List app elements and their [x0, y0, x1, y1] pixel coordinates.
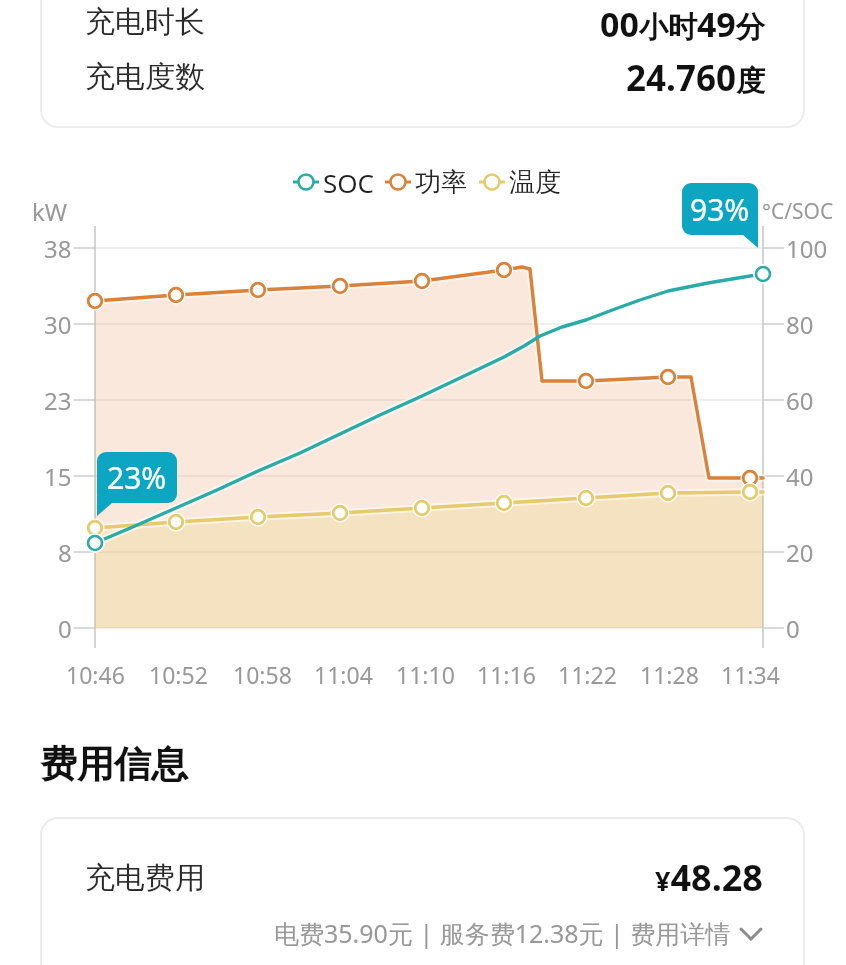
staticText: 24.760度 [626, 54, 765, 102]
staticText: 0 [786, 612, 800, 645]
staticText: 40 [786, 460, 814, 493]
staticText: 30 [44, 308, 72, 341]
staticText: 0 [58, 612, 72, 645]
staticText: 10:46 [66, 659, 125, 690]
staticText: 93% [690, 189, 750, 230]
button[interactable]: 电费35.90元 | 服务费12.38元 | 费用详情 [274, 916, 763, 950]
staticText: 充电时长 [85, 3, 205, 41]
staticText: 23% [107, 457, 167, 498]
staticText: 10:58 [233, 659, 292, 690]
staticText: 11:22 [558, 659, 617, 690]
staticText: 费用信息 [40, 741, 188, 788]
staticText: ¥48.28 [655, 853, 763, 902]
staticText: kW [32, 195, 68, 228]
staticText: 充电费用 [85, 859, 205, 897]
button[interactable] [478, 166, 558, 198]
staticText: 电费35.90元 | 服务费12.38元 | 费用详情 [274, 916, 731, 950]
staticText: 11:28 [640, 659, 699, 690]
staticText: 38 [44, 232, 72, 265]
staticText: 11:04 [314, 659, 373, 690]
staticText: 11:34 [721, 659, 780, 690]
staticText: 80 [786, 308, 814, 341]
staticText: 11:10 [396, 659, 455, 690]
staticText: 温度 [509, 166, 561, 199]
staticText: 100 [786, 232, 828, 265]
staticText: 23 [44, 384, 72, 417]
staticText: 11:16 [477, 659, 536, 690]
staticText: 15 [44, 460, 72, 493]
staticText: 00小时49分 [600, 1, 765, 47]
staticText: 60 [786, 384, 814, 417]
staticText: SOC [323, 165, 375, 200]
staticText: °C/SOC [762, 197, 834, 226]
button[interactable] [384, 166, 466, 198]
staticText: 8 [58, 536, 72, 569]
staticText: 20 [786, 536, 814, 569]
staticText: 功率 [415, 166, 467, 199]
staticText: 10:52 [149, 659, 208, 690]
staticText: 充电度数 [85, 58, 205, 96]
button[interactable] [292, 166, 372, 198]
